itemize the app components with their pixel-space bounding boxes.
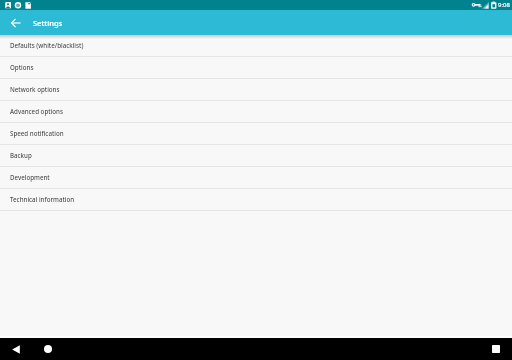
button[interactable]: Backup [0,145,512,167]
staticText: Defaults (white/blacklist) [10,41,84,49]
staticText: 9:08 [498,1,510,9]
button[interactable]: Back [6,339,26,359]
button[interactable]: Home [38,339,58,359]
button[interactable]: Technical information [0,189,512,211]
staticText: Development [10,173,50,181]
button[interactable]: Development [0,167,512,189]
staticText: Settings [33,18,63,28]
button[interactable]: Navigate up [3,11,27,35]
button[interactable]: Network options [0,79,512,101]
staticText: Speed notification [10,129,64,137]
staticText: Backup [10,151,32,159]
button[interactable]: Recent apps [486,339,506,359]
staticText: Advanced options [10,107,63,115]
staticText: Network options [10,85,60,93]
button[interactable]: Advanced options [0,101,512,123]
staticText: Options [10,63,34,71]
button[interactable]: Defaults (white/blacklist) [0,35,512,57]
button[interactable]: Options [0,57,512,79]
staticText: Technical information [10,195,75,203]
button[interactable]: Speed notification [0,123,512,145]
